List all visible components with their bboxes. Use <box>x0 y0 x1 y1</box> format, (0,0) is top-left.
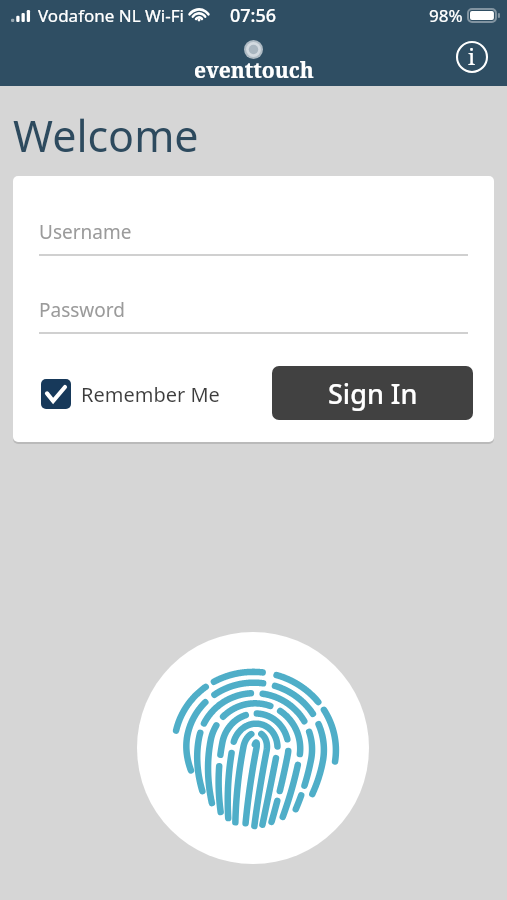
button[interactable]: Information <box>453 38 491 76</box>
staticText: Welcome <box>13 106 199 165</box>
staticText: Password <box>39 297 125 323</box>
staticText: eventtouch <box>194 56 314 85</box>
staticText: i <box>468 41 476 71</box>
staticText: 07:56 <box>230 3 277 28</box>
staticText: 98% <box>429 4 463 27</box>
button[interactable]: Remember Me <box>41 376 220 412</box>
staticText: Username <box>39 219 132 245</box>
button[interactable]: Sign In <box>272 366 473 420</box>
staticText: Remember Me <box>81 381 220 408</box>
staticText: Vodafone NL Wi-Fi <box>38 4 184 27</box>
button[interactable]: Sign in with fingerprint <box>137 632 369 864</box>
staticText: Sign In <box>328 375 418 412</box>
